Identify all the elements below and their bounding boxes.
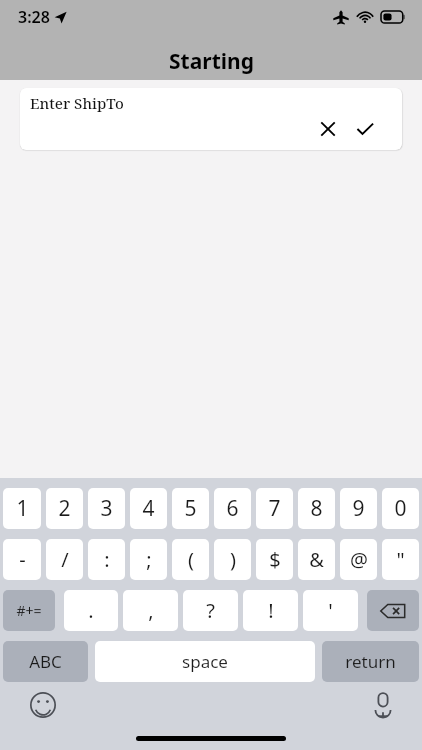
staticText: Starting	[169, 47, 254, 76]
button[interactable]: space	[95, 641, 315, 682]
staticText: 3:28	[18, 6, 50, 28]
staticText: 6	[226, 494, 239, 523]
button[interactable]: (	[172, 539, 209, 580]
staticText: .	[88, 597, 94, 624]
staticText: ,	[148, 597, 154, 624]
button[interactable]: 1	[3, 488, 41, 529]
staticText: 4	[142, 494, 155, 523]
button[interactable]: )	[214, 539, 251, 580]
staticText: space	[182, 650, 228, 673]
button[interactable]: 5	[172, 488, 209, 529]
staticText: )	[230, 546, 236, 573]
staticText: 3	[100, 494, 113, 523]
button[interactable]: 6	[214, 488, 251, 529]
staticText: 7	[268, 494, 281, 523]
button[interactable]: return	[322, 641, 419, 682]
button[interactable]: Clear	[313, 114, 343, 144]
staticText: 1	[16, 494, 29, 523]
button[interactable]: -	[3, 539, 41, 580]
staticText: 5	[184, 494, 197, 523]
staticText: return	[345, 650, 396, 673]
button[interactable]: $	[256, 539, 293, 580]
button[interactable]: Backspace	[367, 590, 419, 631]
button[interactable]: 4	[130, 488, 167, 529]
staticText: '	[328, 597, 333, 624]
staticText: "	[396, 546, 405, 573]
button[interactable]: "	[382, 539, 419, 580]
staticText: 9	[352, 494, 365, 523]
button[interactable]: Confirm	[350, 114, 380, 144]
button[interactable]: &	[298, 539, 335, 580]
staticText: #+=	[16, 601, 42, 620]
staticText: (	[188, 546, 194, 573]
button[interactable]: 0	[382, 488, 419, 529]
staticText: !	[268, 597, 274, 624]
button[interactable]: ,	[123, 590, 178, 631]
staticText: 0	[394, 494, 407, 523]
staticText: ;	[146, 546, 152, 573]
button[interactable]: ?	[183, 590, 238, 631]
button[interactable]: 8	[298, 488, 335, 529]
button[interactable]: !	[243, 590, 298, 631]
staticText: 2	[58, 494, 71, 523]
button[interactable]: 3	[88, 488, 125, 529]
staticText: :	[104, 546, 110, 573]
button[interactable]: @	[340, 539, 377, 580]
button[interactable]: '	[303, 590, 358, 631]
staticText: -	[19, 546, 26, 573]
button[interactable]: ;	[130, 539, 167, 580]
button[interactable]: #+=	[3, 590, 55, 631]
button[interactable]: /	[46, 539, 83, 580]
button[interactable]: 9	[340, 488, 377, 529]
button[interactable]: Dictation	[366, 688, 400, 722]
button[interactable]: 7	[256, 488, 293, 529]
staticText: Enter ShipTo	[30, 93, 124, 113]
button[interactable]: 2	[46, 488, 83, 529]
staticText: ABC	[29, 650, 62, 673]
staticText: ?	[206, 597, 215, 624]
staticText: $	[269, 546, 281, 573]
button[interactable]: Emoji	[26, 688, 60, 722]
button[interactable]: :	[88, 539, 125, 580]
staticText: /	[61, 546, 69, 573]
staticText: &	[309, 546, 324, 573]
staticText: 8	[310, 494, 323, 523]
button[interactable]: .	[64, 590, 118, 631]
staticText: @	[350, 546, 368, 573]
button[interactable]: ABC	[3, 641, 88, 682]
